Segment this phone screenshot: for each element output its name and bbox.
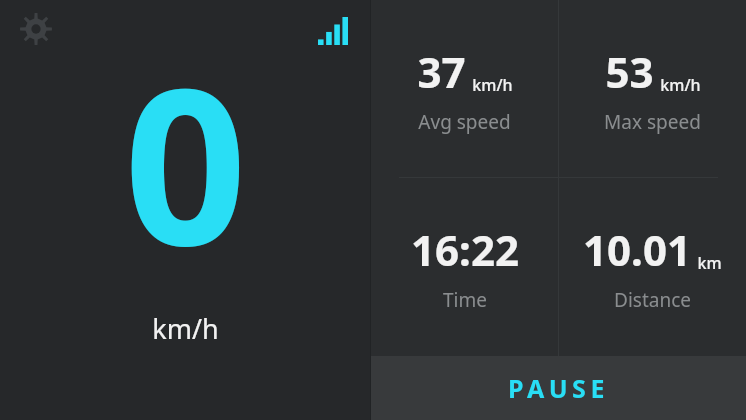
staticText: 10.01: [583, 221, 691, 278]
staticText: km: [697, 252, 722, 274]
button[interactable]: 16:22: [371, 178, 558, 356]
staticText: 0: [124, 15, 247, 308]
staticText: 16:22: [411, 221, 519, 278]
staticText: Avg speed: [418, 109, 511, 135]
staticText: PAUSE: [508, 371, 609, 405]
button[interactable]: 53: [559, 0, 746, 177]
other: GPS signal strength: [318, 17, 348, 45]
button[interactable]: Settings: [20, 13, 52, 45]
staticText: km/h: [152, 310, 219, 347]
button[interactable]: PAUSE: [371, 356, 746, 420]
staticText: 53: [605, 43, 654, 100]
button[interactable]: 10.01: [559, 178, 746, 356]
staticText: km/h: [472, 74, 513, 96]
staticText: Distance: [614, 287, 691, 313]
staticText: Time: [443, 287, 487, 313]
button[interactable]: 37: [371, 0, 558, 177]
staticText: km/h: [660, 74, 701, 96]
staticText: Max speed: [604, 109, 701, 135]
staticText: 37: [417, 43, 466, 100]
